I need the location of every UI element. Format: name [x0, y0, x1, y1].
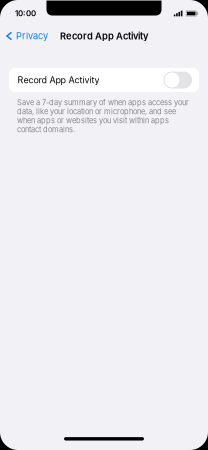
staticText: Record App Activity [60, 30, 148, 42]
staticText: Privacy [16, 30, 48, 41]
staticText: Save a 7-day summary of when apps access… [17, 98, 189, 134]
button[interactable]: Privacy [0, 27, 52, 44]
staticText: 10:00 [15, 9, 36, 18]
button[interactable]: Record App Activity [9, 68, 199, 92]
staticText: Record App Activity [17, 75, 99, 85]
